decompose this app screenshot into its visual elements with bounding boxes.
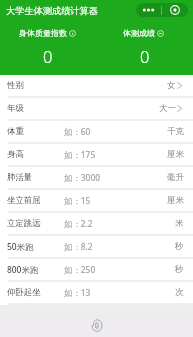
staticText: 立定跳远: [7, 218, 41, 229]
staticText: 如：15: [64, 195, 167, 206]
staticText: 性别: [7, 80, 24, 91]
button[interactable]: 年级: [0, 98, 193, 121]
staticText: 身体质量指数: [19, 28, 67, 38]
staticText: 50米跑: [7, 241, 34, 252]
staticText: 如：250: [64, 264, 175, 275]
staticText: 秒: [175, 241, 184, 252]
staticText: 体测成绩: [123, 28, 155, 38]
button[interactable]: 身高: [0, 144, 193, 167]
staticText: 肺活量: [7, 172, 33, 183]
button[interactable]: 800米跑: [0, 259, 193, 282]
staticText: 如：13: [64, 287, 175, 298]
button[interactable]: 体重: [0, 121, 193, 144]
staticText: 大学生体测成绩计算器: [6, 5, 98, 17]
staticText: 厘米: [167, 195, 184, 206]
button[interactable]: 50米跑: [0, 236, 193, 259]
staticText: 坐立前屈: [7, 195, 41, 206]
staticText: 0: [140, 45, 150, 67]
button[interactable]: 立定跳远: [0, 213, 193, 236]
staticText: 女: [167, 80, 176, 91]
button[interactable]: 坐立前屈: [0, 190, 193, 213]
staticText: 800米跑: [7, 264, 39, 275]
staticText: 体重: [7, 126, 24, 137]
button[interactable]: 肺活量: [0, 167, 193, 190]
staticText: 大一: [159, 103, 176, 114]
staticText: 米: [175, 218, 184, 229]
staticText: 如：175: [64, 149, 167, 160]
staticText: 次: [175, 287, 184, 298]
button[interactable]: 仰卧起坐: [0, 282, 193, 305]
button[interactable]: 体测成绩: [96, 19, 193, 75]
staticText: 毫升: [167, 172, 184, 183]
staticText: 秒: [175, 264, 184, 275]
button[interactable]: 性别: [0, 75, 193, 98]
button[interactable]: Close mini program: [162, 3, 188, 17]
staticText: 仰卧起坐: [7, 287, 41, 298]
staticText: 千克: [167, 126, 184, 137]
staticText: 如：8.2: [64, 241, 175, 252]
staticText: 厘米: [167, 149, 184, 160]
button[interactable]: 身体质量指数: [0, 19, 96, 75]
staticText: 年级: [7, 103, 24, 114]
staticText: 如：3000: [64, 172, 167, 183]
staticText: 如：60: [64, 126, 167, 137]
staticText: 如：2.2: [64, 218, 175, 229]
button[interactable]: More options: [136, 3, 161, 17]
staticText: 0: [43, 45, 53, 67]
staticText: 身高: [7, 149, 24, 160]
